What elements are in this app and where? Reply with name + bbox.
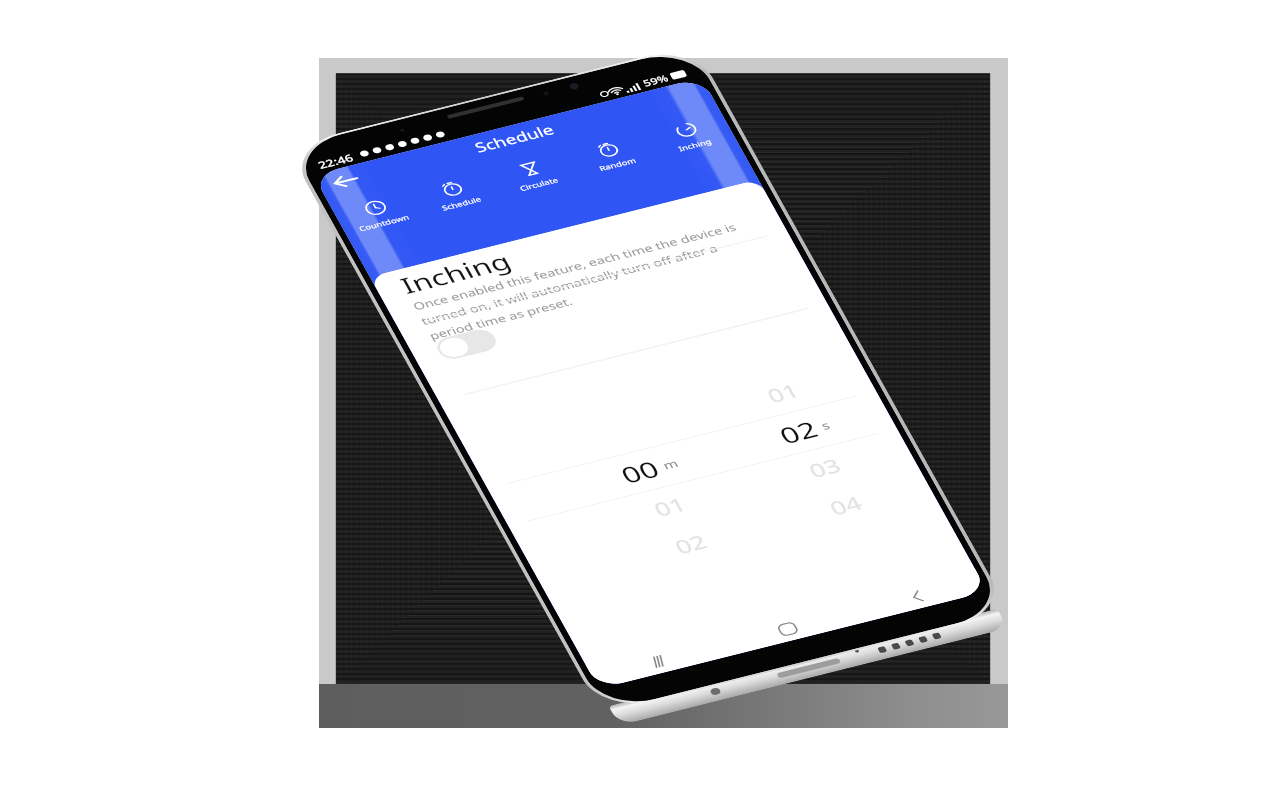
button[interactable] [432, 326, 501, 362]
button[interactable]: Random [565, 132, 664, 189]
staticText: 22:46 [315, 150, 357, 172]
staticText: 01 [762, 377, 806, 409]
staticText: Countdown [357, 212, 411, 234]
staticText: Inching [394, 244, 517, 301]
button[interactable]: Home [716, 600, 858, 658]
staticText: 02 [670, 529, 713, 560]
button[interactable]: Schedule [409, 171, 508, 228]
staticText: Random [597, 155, 638, 173]
staticText: s [818, 418, 833, 433]
staticText: 04 [825, 490, 868, 522]
staticText: 59% [640, 72, 671, 89]
button[interactable]: Circulate [487, 151, 586, 208]
staticText: Circulate [518, 175, 560, 193]
button[interactable]: Inching [643, 112, 742, 169]
staticText: Schedule [471, 120, 557, 157]
staticText: Once enabled this feature, each time the… [410, 215, 763, 345]
staticText: Schedule [440, 194, 483, 213]
button[interactable]: Back [320, 164, 370, 198]
staticText: 01 [649, 491, 692, 523]
staticText: 02 [773, 413, 824, 450]
button[interactable]: Back [845, 567, 988, 625]
staticText: m [660, 455, 681, 472]
staticText: Inching [676, 136, 713, 153]
button[interactable]: Recents [586, 632, 729, 690]
button[interactable]: Countdown [332, 191, 430, 247]
staticText: 00 [615, 453, 665, 490]
staticText: 03 [804, 452, 847, 484]
